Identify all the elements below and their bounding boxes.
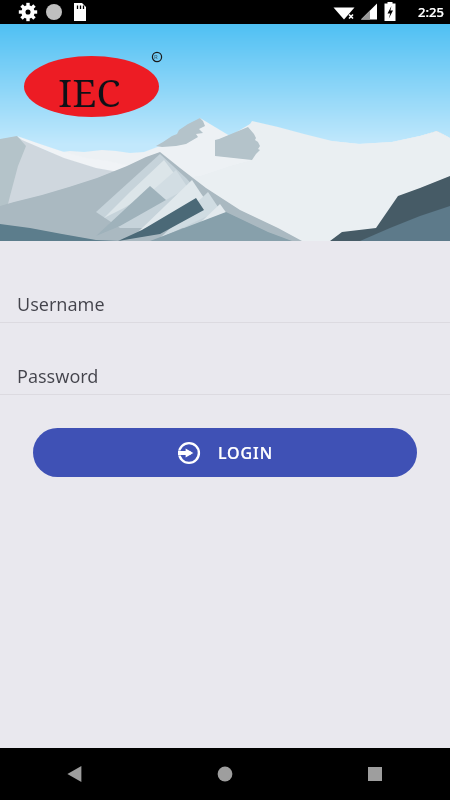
staticText: Username — [17, 292, 105, 317]
button[interactable]: Back — [0, 748, 150, 800]
button[interactable]: LOGIN — [33, 428, 417, 477]
button[interactable]: Password — [0, 364, 450, 395]
staticText: IEC — [58, 65, 121, 118]
button[interactable]: Username — [0, 292, 450, 323]
staticText: LOGIN — [218, 442, 273, 464]
staticText: R — [154, 53, 158, 61]
button[interactable]: Home — [150, 748, 300, 800]
staticText: Password — [17, 364, 99, 389]
staticText: 2:25 — [418, 3, 444, 21]
button[interactable]: Recents — [300, 748, 450, 800]
